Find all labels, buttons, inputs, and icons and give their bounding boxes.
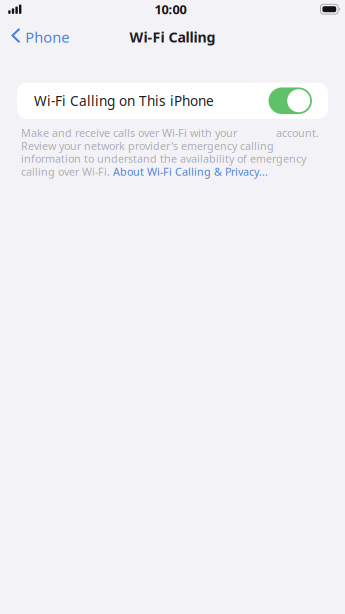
staticText: Review your network provider's emergency… [21, 138, 274, 153]
button[interactable]: Wi-Fi Calling on This iPhone [17, 82, 328, 119]
staticText: information to understand the availabili… [21, 151, 306, 166]
staticText: 10:00 [154, 0, 186, 18]
staticText: calling over Wi-Fi. [21, 164, 113, 179]
button[interactable]: About Wi-Fi Calling & Privacy... [113, 164, 268, 179]
staticText: About Wi-Fi Calling & Privacy... [113, 164, 268, 179]
staticText: Wi-Fi Calling on This iPhone [34, 91, 214, 110]
staticText: Phone [25, 27, 69, 47]
staticText: Make and receive calls over Wi-Fi with y… [21, 125, 319, 140]
staticText: Wi-Fi Calling [129, 27, 215, 47]
button[interactable]: Phone [0, 22, 77, 52]
